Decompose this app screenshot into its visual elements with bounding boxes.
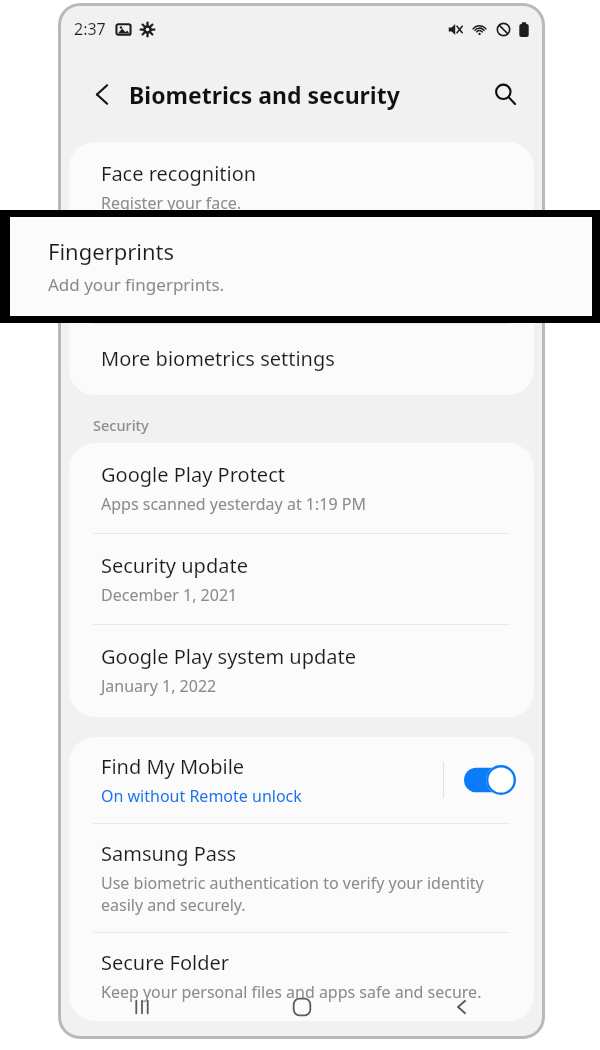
button[interactable]: Recents xyxy=(61,978,222,1036)
staticText: Find My Mobile xyxy=(101,753,245,780)
staticText: Secure Folder xyxy=(101,949,230,976)
button[interactable]: Back xyxy=(382,978,542,1036)
staticText: Use biometric authentication to verify y… xyxy=(101,872,516,916)
staticText: Fingerprints xyxy=(48,236,175,266)
button[interactable]: Home xyxy=(222,978,382,1036)
staticText: Apps scanned yesterday at 1:19 PM xyxy=(101,493,366,515)
button[interactable]: Security update xyxy=(69,534,534,624)
staticText: Add your fingerprints. xyxy=(48,273,225,296)
staticText: December 1, 2021 xyxy=(101,584,238,606)
button[interactable]: More biometrics settings xyxy=(69,324,534,395)
staticText: Biometrics and security xyxy=(129,79,400,110)
staticText: January 1, 2022 xyxy=(101,675,217,697)
button[interactable]: Face recognition xyxy=(69,142,534,232)
button[interactable]: Google Play Protect xyxy=(69,443,534,533)
staticText: Google Play Protect xyxy=(101,461,285,488)
staticText: Samsung Pass xyxy=(101,840,237,867)
button[interactable]: Back xyxy=(79,71,125,117)
staticText: 2:37 xyxy=(74,18,106,40)
staticText: Security update xyxy=(101,552,248,579)
staticText: On without Remote unlock xyxy=(101,785,302,807)
button[interactable]: Find My Mobile, on xyxy=(464,765,516,795)
button[interactable]: Secure Folder xyxy=(69,933,534,1021)
staticText: More biometrics settings xyxy=(101,345,335,372)
button[interactable]: Fingerprints xyxy=(69,233,534,323)
button[interactable]: Samsung Pass xyxy=(69,824,534,932)
button[interactable]: Search xyxy=(482,71,528,117)
staticText: Fingerprints xyxy=(101,251,216,278)
staticText: Security xyxy=(93,415,149,435)
staticText: Face recognition xyxy=(101,160,257,187)
staticText: Register your face. xyxy=(101,192,242,214)
staticText: Google Play system update xyxy=(101,643,357,670)
button[interactable]: Fingerprints xyxy=(10,217,592,316)
staticText: Keep your personal files and apps safe a… xyxy=(101,981,482,1003)
button[interactable]: Google Play system update xyxy=(69,625,534,717)
staticText: Add your fingerprints. xyxy=(101,283,267,305)
button[interactable]: Find My Mobile xyxy=(69,737,534,823)
